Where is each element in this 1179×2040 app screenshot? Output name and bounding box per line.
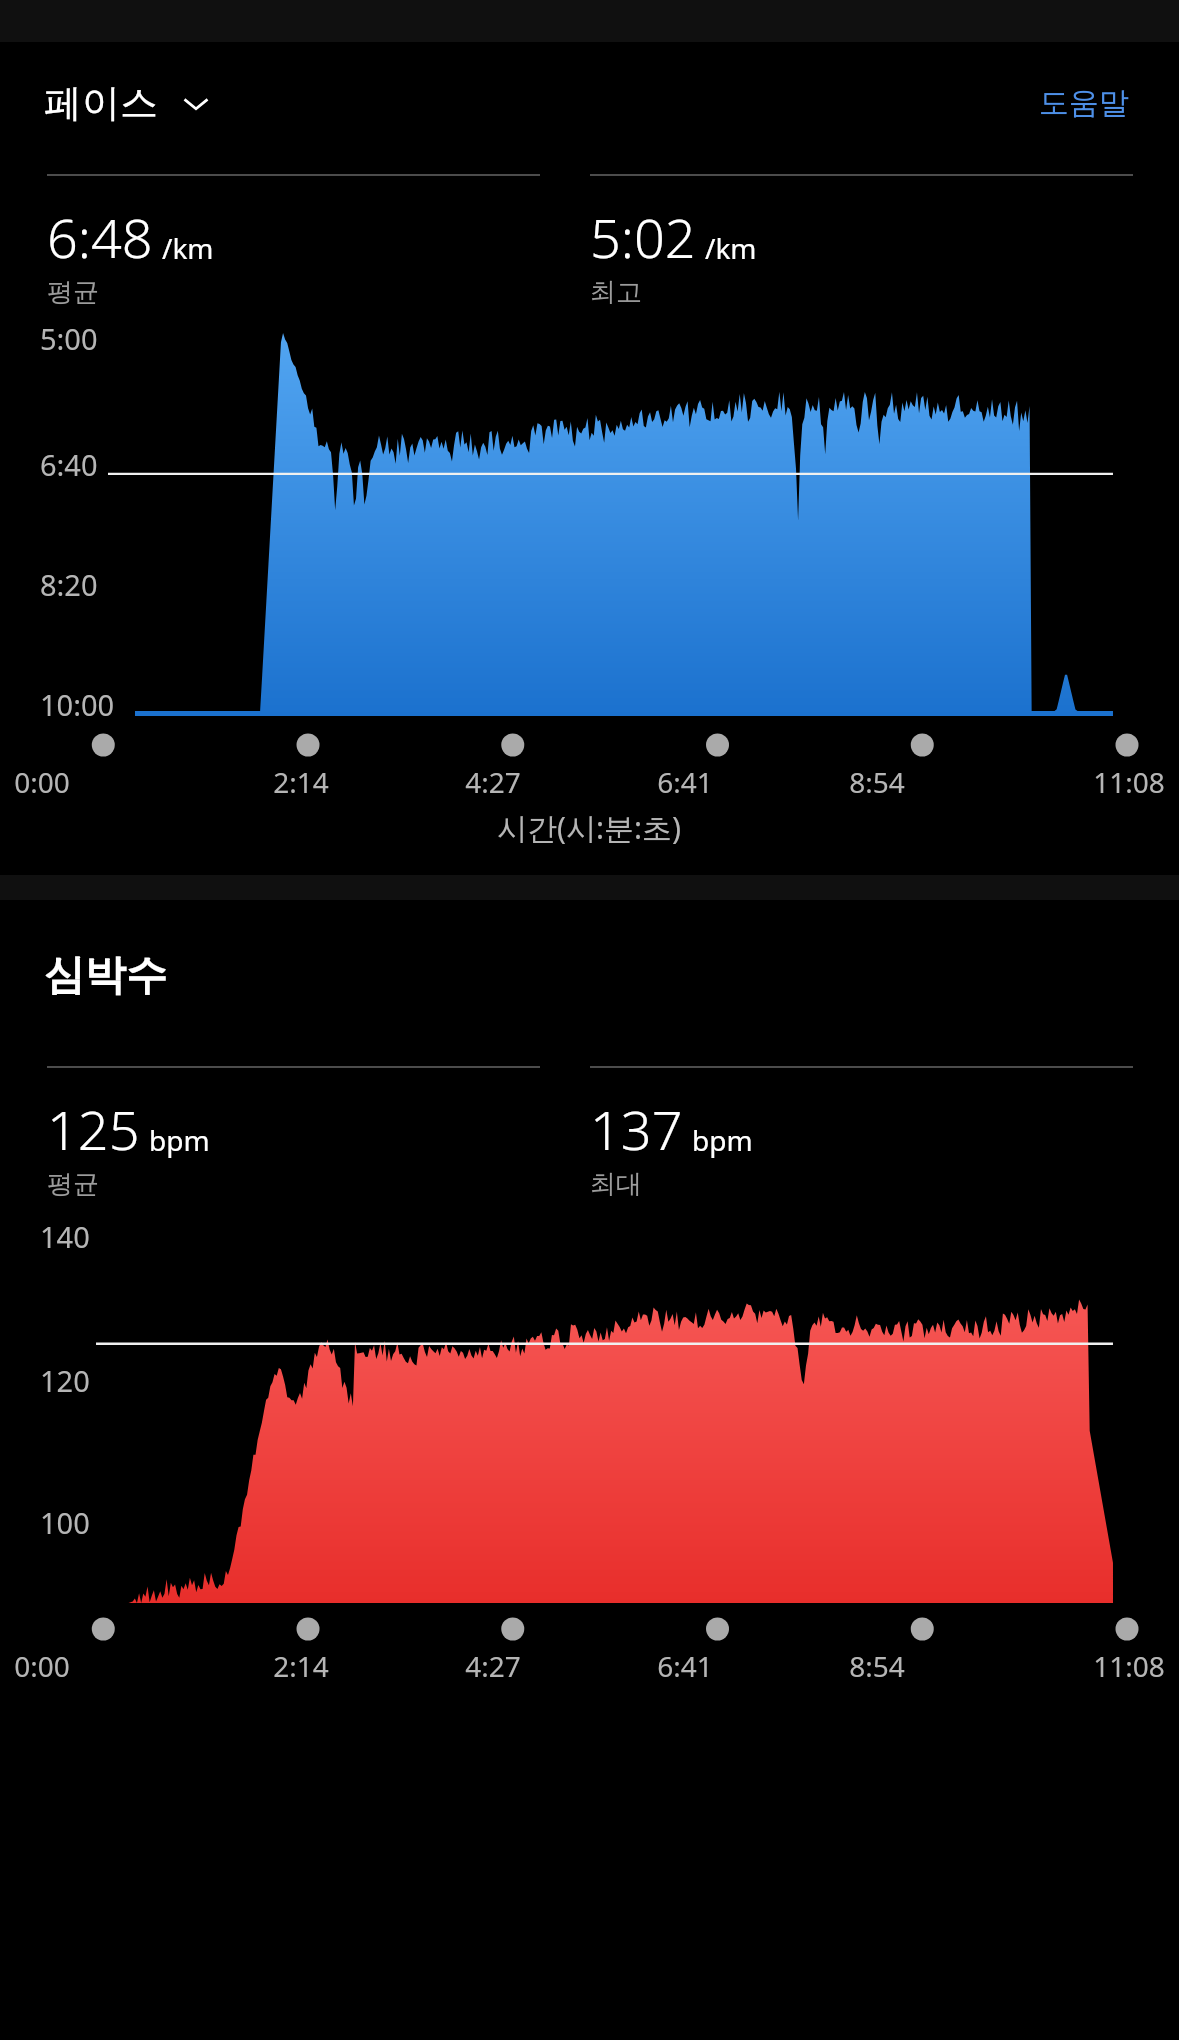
staticText: 8:20 bbox=[40, 565, 98, 604]
staticText: 최고 bbox=[590, 276, 642, 309]
staticText: 8:54 bbox=[849, 763, 905, 801]
staticText: bpm bbox=[149, 1121, 210, 1159]
staticText: 4:27 bbox=[465, 1647, 521, 1685]
staticText: 6:48 bbox=[47, 200, 153, 274]
staticText: 125 bbox=[47, 1092, 140, 1166]
staticText: 시간(시:분:초) bbox=[497, 807, 682, 848]
staticText: 4:27 bbox=[465, 763, 521, 801]
staticText: /km bbox=[162, 229, 214, 267]
staticText: 137 bbox=[590, 1092, 683, 1166]
staticText: 11:08 bbox=[1093, 763, 1165, 801]
staticText: 120 bbox=[40, 1361, 90, 1400]
staticText: 6:40 bbox=[40, 445, 98, 484]
staticText: 0:00 bbox=[14, 763, 70, 801]
staticText: 140 bbox=[40, 1217, 90, 1256]
staticText: /km bbox=[705, 229, 757, 267]
staticText: 6:41 bbox=[657, 1647, 713, 1685]
button[interactable]: 도움말 bbox=[1031, 76, 1137, 130]
button[interactable]: 페이스 bbox=[44, 79, 222, 127]
staticText: 5:02 bbox=[590, 200, 696, 274]
staticText: 8:54 bbox=[849, 1647, 905, 1685]
staticText: 평균 bbox=[47, 276, 99, 309]
staticText: 0:00 bbox=[14, 1647, 70, 1685]
staticText: 심박수 bbox=[44, 950, 167, 1002]
staticText: 10:00 bbox=[40, 685, 115, 724]
staticText: 최대 bbox=[590, 1168, 642, 1201]
staticText: bpm bbox=[692, 1121, 753, 1159]
staticText: 100 bbox=[40, 1503, 90, 1542]
staticText: 6:41 bbox=[657, 763, 713, 801]
staticText: 2:14 bbox=[273, 763, 329, 801]
staticText: 5:00 bbox=[40, 319, 98, 358]
staticText: 2:14 bbox=[273, 1647, 329, 1685]
staticText: 11:08 bbox=[1093, 1647, 1165, 1685]
staticText: 평균 bbox=[47, 1168, 99, 1201]
staticText: 도움말 bbox=[1039, 84, 1129, 122]
other: Change metric bbox=[178, 85, 214, 121]
staticText: 페이스 bbox=[44, 79, 158, 127]
